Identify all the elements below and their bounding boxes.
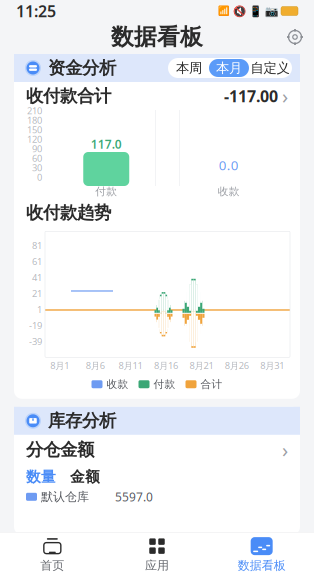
- button[interactable]: 应用: [105, 532, 209, 578]
- staticText: 首页: [40, 558, 64, 573]
- staticText: 0.0: [219, 156, 239, 174]
- staticText: 本周: [176, 60, 202, 76]
- button[interactable]: 数据看板: [209, 532, 314, 578]
- staticText: 117.0: [91, 136, 122, 152]
- staticText: 30: [32, 162, 42, 174]
- staticText: 8月21: [189, 359, 213, 372]
- staticText: 数量: [26, 468, 56, 486]
- staticText: 收付款合计: [26, 85, 111, 107]
- button[interactable]: 数量: [26, 468, 56, 486]
- button[interactable]: 自定义: [249, 59, 291, 77]
- staticText: ›: [282, 83, 288, 109]
- staticText: 📶: [218, 6, 230, 16]
- button[interactable]: 本周: [169, 59, 209, 77]
- staticText: 5597.0: [115, 489, 153, 505]
- staticText: 8月26: [225, 359, 249, 372]
- staticText: 金额: [70, 468, 100, 486]
- staticText: 📱: [249, 5, 262, 17]
- staticText: 数据看板: [238, 558, 286, 573]
- staticText: 60: [32, 152, 42, 164]
- button[interactable]: 金额: [70, 468, 100, 486]
- staticText: 150: [27, 124, 42, 136]
- staticText: 📷: [265, 5, 278, 17]
- staticText: 本月: [216, 60, 242, 76]
- staticText: -19: [29, 319, 42, 331]
- button[interactable]: 首页: [0, 532, 105, 578]
- button[interactable]: 分仓金额: [14, 435, 300, 465]
- staticText: 8月11: [119, 359, 143, 372]
- staticText: 21: [32, 287, 42, 299]
- button[interactable]: 设置: [282, 24, 308, 50]
- button[interactable]: 收付款合计: [14, 82, 300, 110]
- button[interactable]: 本月: [209, 59, 249, 77]
- staticText: 默认仓库: [41, 489, 89, 504]
- staticText: 11:25: [16, 0, 56, 22]
- staticText: 41: [32, 271, 42, 283]
- staticText: 付款: [95, 185, 117, 198]
- staticText: 8月31: [260, 359, 284, 372]
- staticText: 8月16: [154, 359, 178, 372]
- staticText: 8月6: [86, 359, 105, 372]
- staticText: 收款: [218, 185, 240, 198]
- staticText: 收款: [106, 378, 128, 391]
- staticText: 资金分析: [48, 57, 116, 79]
- staticText: 0: [37, 171, 42, 183]
- staticText: 分仓金额: [26, 439, 94, 460]
- staticText: -39: [29, 335, 42, 347]
- staticText: 付款: [153, 378, 175, 391]
- staticText: 收付款趋势: [26, 202, 111, 223]
- staticText: 🔇: [233, 5, 246, 17]
- staticText: 81: [32, 239, 42, 251]
- staticText: 120: [27, 133, 42, 145]
- staticText: 1: [37, 303, 42, 315]
- staticText: 应用: [145, 558, 169, 573]
- staticText: 合计: [200, 378, 222, 391]
- staticText: -117.00: [224, 85, 278, 107]
- staticText: 数据看板: [111, 23, 203, 51]
- staticText: 8月1: [50, 359, 69, 372]
- staticText: ›: [282, 436, 288, 463]
- staticText: 自定义: [250, 60, 289, 76]
- staticText: 61: [32, 255, 42, 267]
- staticText: 210: [27, 105, 42, 117]
- staticText: 180: [27, 114, 42, 126]
- staticText: 90: [32, 143, 42, 155]
- staticText: 库存分析: [48, 410, 116, 431]
